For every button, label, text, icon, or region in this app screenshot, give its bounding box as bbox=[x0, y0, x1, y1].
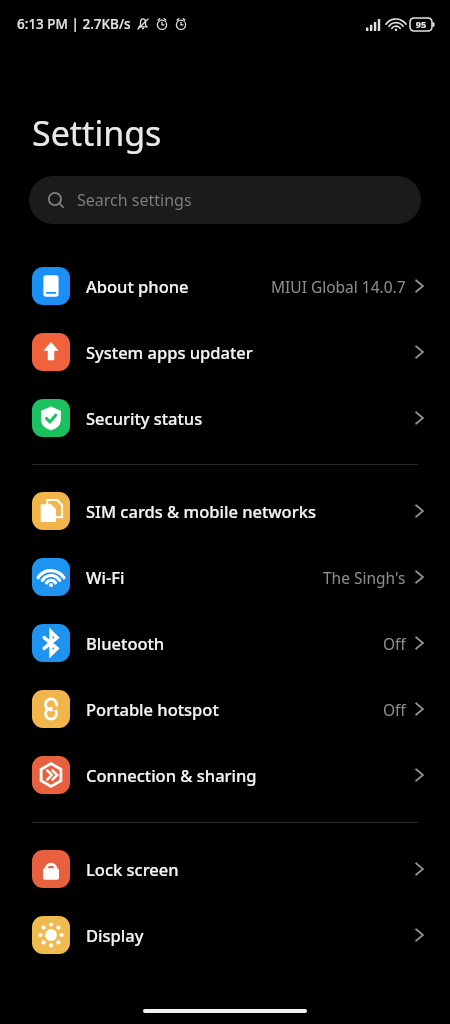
staticText: MIUI Global 14.0.7 bbox=[271, 276, 406, 297]
staticText: Settings bbox=[32, 110, 162, 156]
staticText: Bluetooth bbox=[86, 632, 165, 654]
staticText: Wi-Fi bbox=[86, 566, 125, 588]
staticText: Search settings bbox=[77, 189, 192, 211]
staticText: About phone bbox=[86, 275, 189, 297]
staticText: Lock screen bbox=[86, 858, 179, 880]
button[interactable]: System apps updater bbox=[0, 319, 450, 385]
staticText: Security status bbox=[86, 407, 203, 429]
button[interactable]: Lock screen bbox=[0, 836, 450, 902]
button[interactable]: Connection & sharing bbox=[0, 742, 450, 808]
staticText: SIM cards & mobile networks bbox=[86, 500, 316, 522]
button[interactable]: Search settings bbox=[29, 176, 421, 224]
staticText: The Singh's bbox=[323, 567, 406, 588]
button[interactable]: SIM cards & mobile networks bbox=[0, 478, 450, 544]
staticText: Connection & sharing bbox=[86, 764, 257, 786]
staticText: Display bbox=[86, 924, 144, 946]
button[interactable]: Security status bbox=[0, 385, 450, 451]
button[interactable]: Bluetooth bbox=[0, 610, 450, 676]
button[interactable]: Display bbox=[0, 902, 450, 968]
staticText: 95 bbox=[410, 18, 432, 30]
staticText: System apps updater bbox=[86, 341, 253, 363]
staticText: 6:13 PM | 2.7KB/s bbox=[17, 15, 131, 33]
staticText: Portable hotspot bbox=[86, 698, 219, 720]
button[interactable]: About phone bbox=[0, 253, 450, 319]
staticText: Off bbox=[383, 699, 406, 720]
button[interactable]: Wi-Fi bbox=[0, 544, 450, 610]
button[interactable]: Portable hotspot bbox=[0, 676, 450, 742]
staticText: Off bbox=[383, 633, 406, 654]
